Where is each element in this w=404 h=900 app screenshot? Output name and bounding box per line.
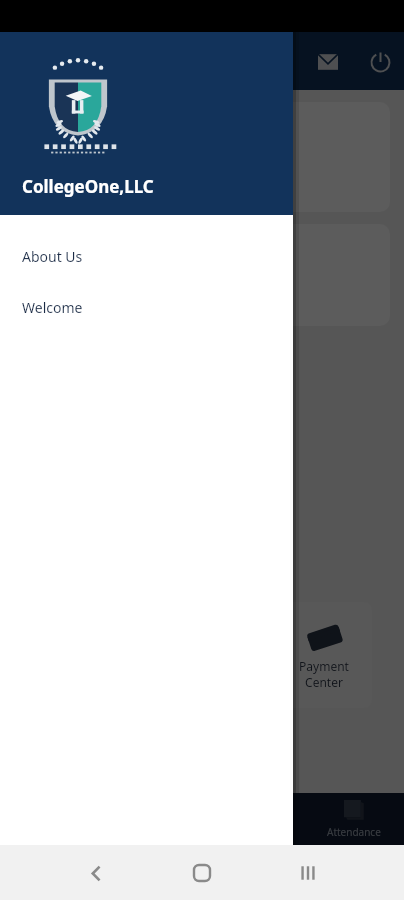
button[interactable]: About Us (0, 231, 293, 282)
staticText: About Us (22, 247, 83, 266)
button[interactable]: Welcome (0, 282, 293, 333)
button[interactable]: Attendance (303, 793, 404, 845)
button[interactable]: Home (180, 851, 224, 895)
staticText: $0.00 (32, 159, 73, 181)
staticText: CollegeOne,LLC (22, 175, 154, 198)
staticText: Attendance (327, 825, 381, 839)
staticText: Payment Center (299, 658, 349, 690)
button[interactable] (14, 224, 390, 326)
button[interactable]: Messages (314, 48, 342, 76)
button[interactable]: Calendar (202, 793, 303, 845)
button[interactable]: Outstanding Fees (14, 102, 390, 212)
staticText: Outstanding Fees (32, 118, 182, 141)
button[interactable]: Log out (366, 48, 394, 76)
button[interactable]: Back (74, 851, 118, 895)
staticText: Welcome (22, 298, 83, 317)
button[interactable]: Payment Center (276, 602, 372, 708)
button[interactable]: Recent apps (286, 851, 330, 895)
